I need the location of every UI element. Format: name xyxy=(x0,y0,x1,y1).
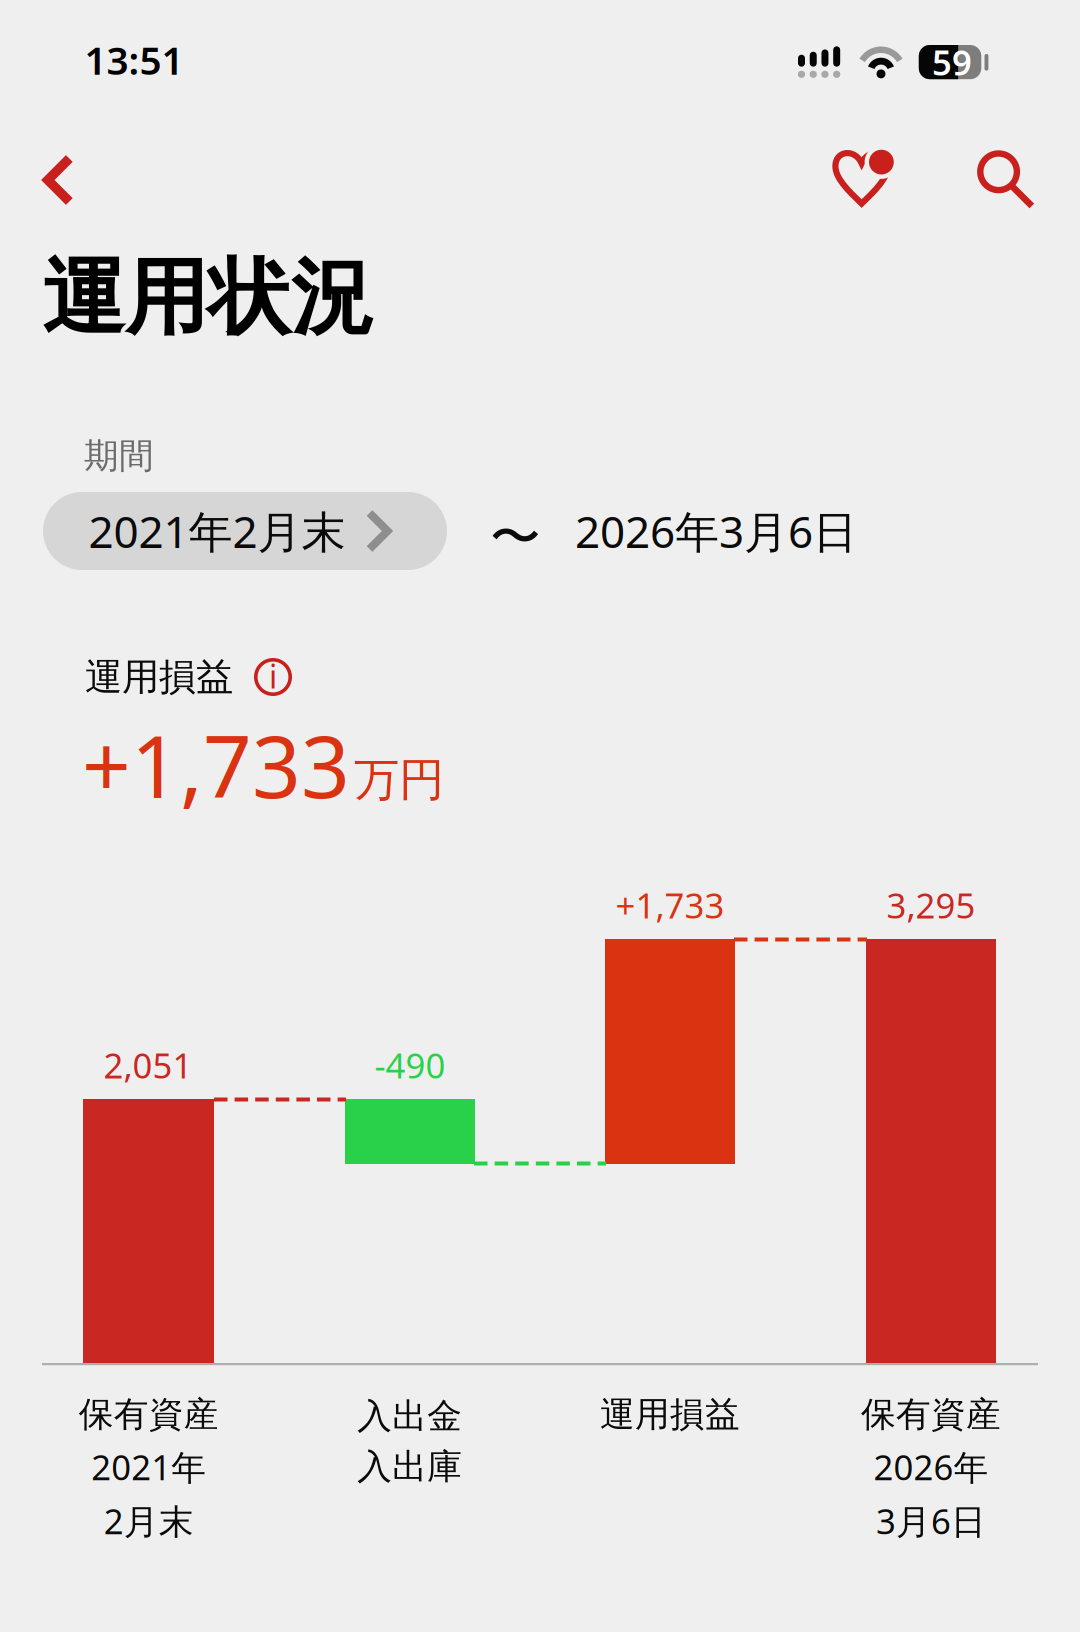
staticText: 運用損益 xyxy=(600,1393,740,1436)
staticText: 59 xyxy=(932,39,972,85)
staticText: 運用損益 xyxy=(85,654,233,700)
button[interactable]: Back xyxy=(10,133,106,229)
staticText: 保有資産 xyxy=(79,1393,219,1436)
button[interactable]: Favorites xyxy=(815,128,915,228)
staticText: 保有資産 xyxy=(861,1393,1001,1436)
staticText: -490 xyxy=(374,1042,445,1088)
staticText: 期間 xyxy=(84,435,154,477)
staticText: 3月6日 xyxy=(876,1498,986,1544)
staticText: +1,733 xyxy=(615,882,724,928)
staticText: 万円 xyxy=(354,752,444,808)
staticText: 2026年3月6日 xyxy=(575,502,857,560)
staticText: 運用状況 xyxy=(42,247,374,349)
staticText: 入出庫 xyxy=(357,1445,462,1488)
staticText: 3,295 xyxy=(886,882,975,928)
button[interactable]: Search xyxy=(958,131,1054,227)
staticText: +1,733 xyxy=(82,708,350,822)
staticText: 2021年 xyxy=(91,1444,206,1490)
staticText: i xyxy=(269,655,277,697)
staticText: 13:51 xyxy=(84,34,183,85)
staticText: 〜 xyxy=(490,506,541,568)
staticText: 2,051 xyxy=(103,1042,192,1088)
staticText: 2021年2月末 xyxy=(88,502,345,560)
button[interactable]: 2021年2月末 xyxy=(43,492,447,570)
staticText: 2月末 xyxy=(104,1498,194,1544)
staticText: 入出金 xyxy=(357,1395,462,1437)
staticText: 2026年 xyxy=(873,1444,988,1490)
